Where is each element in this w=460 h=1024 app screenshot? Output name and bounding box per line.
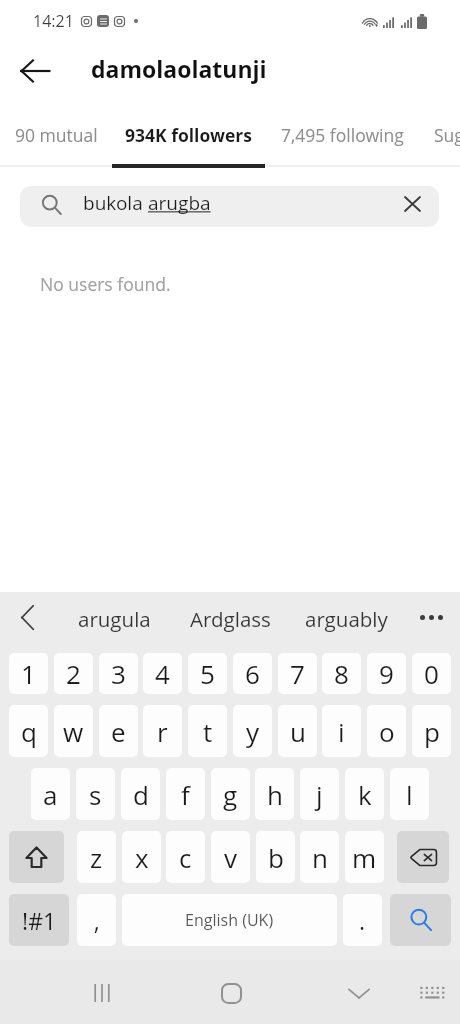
button[interactable]: arugula [56, 592, 172, 645]
button[interactable]: r [143, 705, 182, 757]
button[interactable]: Search [390, 894, 451, 946]
staticText: w [63, 714, 84, 749]
button[interactable]: q [9, 705, 48, 757]
button[interactable]: z [77, 831, 116, 883]
staticText: c [179, 840, 192, 875]
button[interactable]: p [412, 705, 451, 757]
button[interactable]: 7 [278, 653, 317, 694]
staticText: Sug [434, 123, 460, 147]
staticText: s [89, 777, 102, 812]
button[interactable]: 8 [322, 653, 361, 694]
button[interactable]: 9 [367, 653, 406, 694]
staticText: q [21, 714, 37, 749]
button[interactable]: Ardglass [172, 592, 288, 645]
staticText: 9 [379, 656, 394, 691]
staticText: arugula [78, 605, 151, 633]
staticText: k [358, 777, 372, 812]
staticText: 4 [155, 656, 170, 691]
button[interactable]: c [166, 831, 205, 883]
staticText: t [203, 714, 213, 749]
button[interactable]: 4 [143, 653, 182, 694]
button[interactable]: bukola [20, 186, 439, 227]
button[interactable]: Recents [62, 960, 142, 1024]
staticText: h [267, 777, 283, 812]
staticText: arguably [305, 605, 388, 633]
staticText: r [157, 714, 168, 749]
button[interactable]: 7,495 following [265, 98, 420, 162]
staticText: . [359, 905, 366, 936]
button[interactable]: 934K followers [112, 98, 265, 162]
button[interactable]: m [345, 831, 384, 883]
button[interactable]: o [367, 705, 406, 757]
button[interactable]: x [122, 831, 161, 883]
button[interactable]: More options [412, 598, 450, 636]
staticText: p [424, 714, 440, 749]
button[interactable]: English (UK) [122, 894, 337, 946]
button[interactable]: 6 [233, 653, 272, 694]
button[interactable]: j [300, 768, 339, 820]
staticText: u [290, 714, 306, 749]
button[interactable]: i [322, 705, 361, 757]
button[interactable]: f [166, 768, 205, 820]
staticText: 934K followers [125, 123, 252, 147]
button[interactable]: u [278, 705, 317, 757]
staticText: 6 [245, 656, 260, 691]
staticText: 14:21 [33, 10, 74, 32]
staticText: e [111, 714, 126, 749]
button[interactable]: Hide keyboard [319, 960, 399, 1024]
button[interactable]: Home [191, 960, 271, 1024]
button[interactable]: , [77, 894, 116, 946]
button[interactable]: Change keyboard [402, 960, 460, 1024]
button[interactable]: t [188, 705, 227, 757]
button[interactable]: !#1 [9, 894, 69, 946]
button[interactable]: Shift [9, 831, 64, 883]
button[interactable]: d [121, 768, 160, 820]
staticText: 2 [66, 656, 81, 691]
staticText: bukola [83, 190, 148, 216]
button[interactable]: h [255, 768, 294, 820]
button[interactable]: s [76, 768, 115, 820]
button[interactable]: 3 [99, 653, 138, 694]
staticText: 5 [200, 656, 215, 691]
staticText: v [224, 840, 238, 875]
staticText: 8 [334, 656, 349, 691]
button[interactable]: a [31, 768, 70, 820]
staticText: , [94, 905, 100, 936]
staticText: f [181, 777, 190, 812]
staticText: 7,495 following [281, 123, 404, 147]
staticText: arugba [148, 190, 211, 216]
staticText: m [352, 840, 377, 875]
staticText: z [90, 840, 103, 875]
button[interactable]: e [99, 705, 138, 757]
button[interactable]: l [390, 768, 429, 820]
staticText: 1 [21, 656, 36, 691]
button[interactable]: Back [14, 50, 56, 92]
button[interactable]: g [211, 768, 250, 820]
button[interactable]: 2 [54, 653, 93, 694]
button[interactable]: 5 [188, 653, 227, 694]
button[interactable]: arguably [288, 592, 404, 645]
button[interactable]: 90 mutual [0, 98, 112, 162]
staticText: 90 mutual [15, 123, 98, 147]
button[interactable]: y [233, 705, 272, 757]
staticText: o [379, 714, 395, 749]
button[interactable]: Sug [420, 98, 460, 162]
button[interactable]: Clear [398, 190, 426, 218]
button[interactable]: 1 [9, 653, 48, 694]
staticText: l [406, 777, 413, 812]
button[interactable]: b [256, 831, 295, 883]
button[interactable]: Backspace [397, 831, 449, 883]
staticText: b [268, 840, 284, 875]
staticText: 3 [111, 656, 126, 691]
button[interactable]: . [343, 894, 382, 946]
staticText: i [338, 714, 345, 749]
button[interactable]: v [211, 831, 250, 883]
button[interactable]: 0 [412, 653, 451, 694]
button[interactable]: w [54, 705, 93, 757]
staticText: a [43, 777, 58, 812]
button[interactable]: Previous suggestions [9, 599, 45, 635]
button[interactable]: n [300, 831, 339, 883]
staticText: Ardglass [190, 605, 271, 633]
button[interactable]: k [345, 768, 384, 820]
staticText: damolaolatunji [91, 53, 267, 84]
